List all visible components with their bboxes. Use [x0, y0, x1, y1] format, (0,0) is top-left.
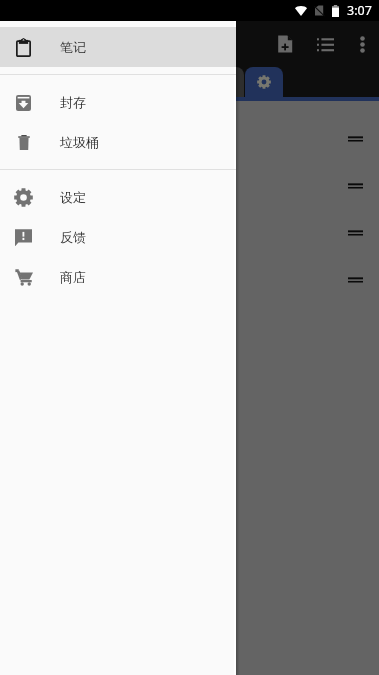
staticText: 封存: [60, 94, 86, 110]
button[interactable]: Settings tab: [245, 67, 283, 97]
button[interactable]: 商店: [0, 257, 236, 297]
button[interactable]: More options: [345, 27, 379, 61]
button[interactable]: 封存: [0, 82, 236, 122]
button[interactable]: 设定: [0, 177, 236, 217]
staticText: 3:07: [347, 2, 372, 19]
staticText: 笔记: [60, 39, 86, 55]
staticText: 反馈: [60, 229, 86, 245]
staticText: 商店: [60, 269, 86, 285]
button[interactable]: Tab: [206, 67, 244, 97]
staticText: 设定: [60, 189, 86, 205]
button[interactable]: 笔记: [0, 27, 236, 67]
staticText: 垃圾桶: [60, 134, 99, 150]
button[interactable]: 反馈: [0, 217, 236, 257]
button[interactable]: New note: [265, 24, 305, 64]
button[interactable]: 垃圾桶: [0, 122, 236, 162]
button[interactable]: List view: [305, 24, 345, 64]
